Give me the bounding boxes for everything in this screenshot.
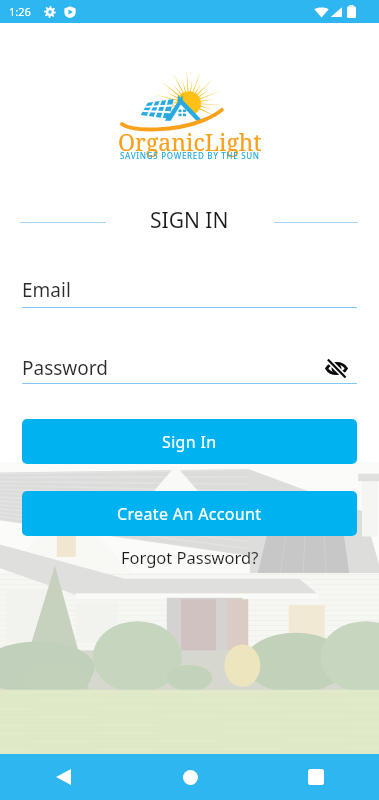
button[interactable]: Show password	[323, 355, 349, 381]
staticText: SIGN IN	[150, 206, 229, 234]
staticText: Email	[22, 277, 357, 303]
staticText: SAVINGS POWERED BY THE SUN	[120, 150, 260, 161]
staticText: Forgot Password?	[121, 546, 259, 568]
button[interactable]: Sign In	[22, 419, 357, 464]
staticText: OrganicLight	[118, 126, 262, 157]
staticText: Password	[22, 355, 331, 381]
button[interactable]: Forgot Password?	[0, 544, 379, 570]
staticText: 1:26	[9, 4, 31, 19]
button[interactable]: Home	[127, 754, 253, 800]
button[interactable]: Back	[0, 754, 127, 800]
staticText: Sign In	[162, 431, 217, 453]
button[interactable]: Create An Account	[22, 491, 357, 536]
button[interactable]: Recent apps	[253, 754, 379, 800]
staticText: Create An Account	[117, 503, 262, 525]
button[interactable]: Password	[22, 355, 357, 381]
button[interactable]: Email	[22, 277, 357, 303]
